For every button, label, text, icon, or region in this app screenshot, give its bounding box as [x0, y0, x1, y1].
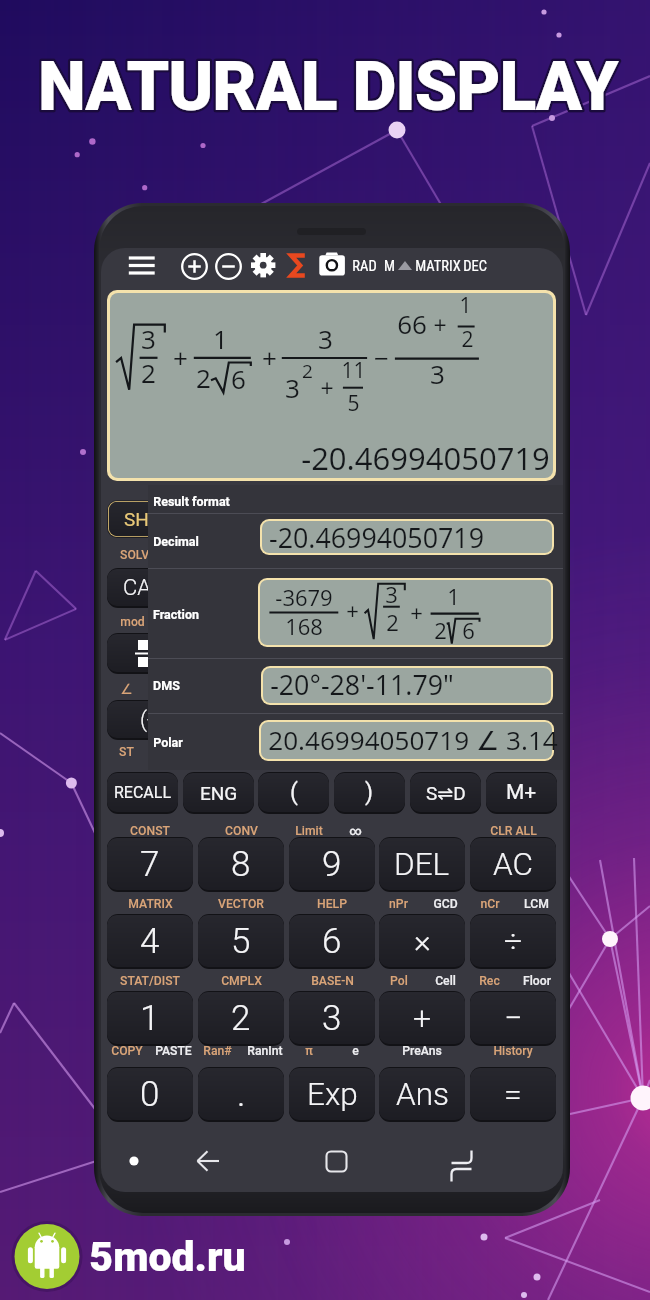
button[interactable]: .	[198, 1067, 284, 1122]
button[interactable]: 6	[289, 914, 375, 969]
staticText: 3	[318, 321, 333, 356]
staticText: ∞	[349, 824, 362, 838]
button[interactable]: 2	[198, 991, 284, 1046]
staticText: +	[320, 372, 334, 403]
button[interactable]: Exp	[289, 1067, 375, 1122]
button[interactable]: 3	[289, 991, 375, 1046]
staticText: 1	[447, 581, 460, 611]
staticText: Polar	[153, 735, 183, 750]
button[interactable]: )	[334, 772, 405, 814]
staticText: 3	[285, 370, 300, 405]
button[interactable]: ENG	[183, 772, 254, 814]
button[interactable]: −	[470, 991, 556, 1046]
staticText: 6	[322, 921, 342, 962]
button[interactable]: Android	[11, 1224, 83, 1296]
staticText: 20.46994050719 ∠ 3.14	[268, 722, 558, 758]
button[interactable]: AC	[470, 837, 556, 892]
button[interactable]: RECALL	[107, 772, 178, 814]
button[interactable]	[262, 521, 552, 553]
staticText: HELP	[317, 897, 347, 911]
staticText: +	[433, 309, 447, 340]
staticText: -20.46994050719	[269, 519, 484, 555]
staticText: +	[410, 597, 423, 627]
button[interactable]: 0	[107, 1067, 193, 1122]
staticText: +	[173, 340, 188, 375]
staticText: 1	[140, 998, 160, 1039]
button[interactable]: Assistant	[125, 1152, 143, 1170]
button[interactable]: Zoom in	[181, 253, 208, 280]
button[interactable]	[260, 580, 551, 645]
staticText: 7	[140, 844, 160, 885]
staticText: RECALL	[114, 783, 172, 802]
button[interactable]: SHIFT	[108, 501, 192, 537]
staticText: =	[504, 1075, 522, 1113]
staticText: ST	[119, 745, 134, 758]
staticText: −	[374, 340, 389, 375]
staticText: NATURAL DISPLAY	[38, 47, 618, 127]
staticText: SHIFT	[124, 508, 177, 530]
button[interactable]: DEL	[379, 837, 465, 892]
button[interactable]: Sum	[290, 254, 306, 277]
button[interactable]: Camera	[319, 252, 346, 277]
staticText: ∠	[120, 681, 133, 695]
button[interactable]: Back	[195, 1148, 222, 1174]
button[interactable]: CALC	[107, 568, 193, 608]
staticText: -20°-28'-11.79"	[270, 666, 454, 702]
staticText: BASE-N	[311, 974, 354, 988]
staticText: +	[346, 595, 359, 625]
staticText: 2	[302, 358, 313, 384]
staticText: Result format	[153, 494, 230, 509]
staticText: COPY	[111, 1044, 143, 1058]
button[interactable]: Switch app	[450, 1148, 476, 1177]
button[interactable]: 8	[198, 837, 284, 892]
button[interactable]: M+	[486, 772, 557, 814]
staticText: (	[290, 779, 298, 806]
button[interactable]: ×	[379, 914, 465, 969]
button[interactable]: Ans	[379, 1067, 465, 1122]
staticText: −	[504, 999, 523, 1037]
button[interactable]: 7	[107, 837, 193, 892]
staticText: LCM	[524, 897, 549, 911]
button[interactable]: Recents	[325, 1150, 348, 1173]
button[interactable]: +	[379, 991, 465, 1046]
staticText: nCr	[480, 897, 500, 911]
staticText: 1	[459, 291, 472, 320]
staticText: 2	[461, 325, 474, 354]
button[interactable]: Zoom out	[215, 253, 242, 280]
staticText: 2	[141, 355, 156, 390]
button[interactable]: S⇌D	[410, 772, 481, 814]
staticText: 11	[341, 356, 366, 385]
staticText: nPr	[389, 897, 408, 911]
staticText: 0	[140, 1074, 160, 1115]
button[interactable]: Settings	[251, 253, 276, 278]
button[interactable]: 1	[107, 991, 193, 1046]
button[interactable]: 5	[198, 914, 284, 969]
button[interactable]	[107, 633, 193, 674]
staticText: mod	[120, 615, 145, 628]
staticText: DEL	[394, 846, 450, 883]
button[interactable]: Menu	[126, 252, 157, 280]
staticText: Exp	[307, 1076, 358, 1113]
staticText: 2	[386, 607, 399, 637]
staticText: CONST	[130, 824, 170, 838]
staticText: Fraction	[153, 607, 199, 622]
staticText: DMS	[153, 678, 180, 693]
button[interactable]: (	[258, 772, 329, 814]
staticText: MATRIX	[128, 897, 173, 911]
staticText: RAD	[352, 258, 377, 275]
staticText: M	[384, 258, 395, 275]
staticText: 5	[347, 389, 360, 418]
staticText: Pol	[390, 974, 408, 988]
staticText: )	[365, 779, 374, 806]
button[interactable]	[263, 668, 551, 703]
staticText: CMPLX	[221, 974, 262, 988]
staticText: π	[305, 1044, 313, 1058]
button[interactable]: 4	[107, 914, 193, 969]
button[interactable]: =	[470, 1067, 556, 1122]
button[interactable]: ÷	[470, 914, 556, 969]
button[interactable]	[261, 722, 552, 759]
button[interactable]: (-)	[107, 700, 193, 740]
staticText: PASTE	[155, 1044, 192, 1058]
button[interactable]: 9	[289, 837, 375, 892]
staticText: Limit	[295, 824, 323, 838]
